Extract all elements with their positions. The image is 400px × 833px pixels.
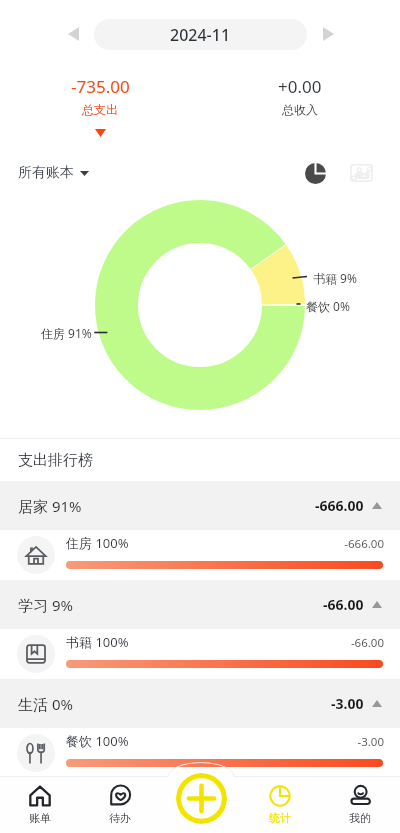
button[interactable]: Next month [311, 17, 345, 51]
button[interactable]: 待办 [80, 776, 160, 833]
staticText: 总支出 [82, 102, 118, 117]
staticText: 账单 [29, 811, 51, 825]
button[interactable]: Pie chart [300, 158, 330, 188]
staticText: -66.00 [323, 595, 364, 614]
button[interactable]: 所有账本 [18, 164, 89, 182]
staticText: 我的 [349, 811, 371, 825]
staticText: 待办 [109, 811, 131, 825]
button[interactable]: 学习 9% [0, 580, 400, 629]
staticText: 所有账本 [18, 164, 74, 182]
button[interactable]: Previous month [56, 17, 90, 51]
staticText: 2024-11 [170, 24, 231, 46]
button[interactable]: 生活 0% [0, 679, 400, 728]
staticText: 居家 91% [18, 496, 82, 516]
button[interactable]: 2024-11 [94, 19, 307, 50]
staticText: 书籍 9% [313, 270, 357, 286]
staticText: -3.00 [0, 734, 384, 750]
button[interactable]: 账单 [0, 776, 80, 833]
staticText: 支出排行榜 [18, 451, 93, 470]
button[interactable]: 我的 [320, 776, 400, 833]
button[interactable]: 餐饮 100% [0, 728, 400, 778]
staticText: 统计 [269, 811, 291, 825]
button[interactable]: 统计 [240, 776, 320, 833]
staticText: 餐饮 100% [66, 732, 129, 750]
staticText: 餐饮 0% [306, 298, 350, 314]
staticText: 住房 91% [41, 325, 92, 341]
button[interactable]: 居家 91% [0, 481, 400, 530]
button[interactable]: Line chart [346, 158, 376, 188]
button[interactable]: Add [176, 773, 227, 824]
button[interactable]: 住房 100% [0, 530, 400, 580]
staticText: -3.00 [331, 694, 364, 713]
staticText: 总收入 [282, 102, 318, 117]
staticText: -735.00 [71, 75, 130, 98]
staticText: -66.00 [0, 635, 384, 651]
staticText: 书籍 100% [66, 633, 129, 651]
staticText: 生活 0% [18, 694, 73, 714]
staticText: +0.00 [278, 75, 322, 98]
staticText: 学习 9% [18, 595, 73, 615]
staticText: 住房 100% [66, 534, 129, 552]
staticText: -666.00 [0, 536, 384, 552]
button[interactable]: 书籍 100% [0, 629, 400, 679]
staticText: -666.00 [315, 496, 364, 515]
